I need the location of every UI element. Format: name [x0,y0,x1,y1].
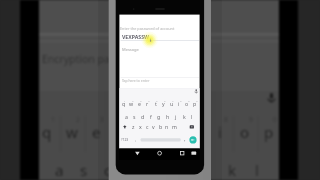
staticText: l [191,113,193,120]
staticText: j [175,113,177,120]
staticText: 1 [124,99,126,102]
staticText: r [146,100,149,107]
staticText: p [193,100,197,107]
staticText: n [165,123,169,130]
staticText: Message [122,47,139,52]
staticText: v [152,123,155,130]
staticText: Enter the password of account [120,26,175,31]
staticText: w [129,100,134,107]
staticText: t [143,122,149,142]
staticText: a [55,160,64,180]
staticText: p [264,122,274,142]
staticText: 9 [188,99,190,102]
staticText: k [228,160,237,180]
staticText: d [141,113,145,120]
staticText: i [218,122,222,142]
staticText: 7 [172,99,174,102]
staticText: 5 [150,115,154,124]
staticText: 2 [132,99,134,102]
staticText: a [125,113,128,120]
staticText: i [178,100,180,107]
staticText: 6 [164,99,166,102]
staticText: o [240,122,250,142]
staticText: Encryption password of [42,52,158,66]
staticText: t [155,100,157,107]
staticText: z [132,123,135,130]
staticText: u [190,122,200,142]
staticText: c [146,123,149,130]
staticText: 7 [199,115,203,124]
staticText: ?123 [121,137,129,142]
staticText: 8 [180,99,182,102]
staticText: VEXPASSW [122,33,150,40]
staticText: o [185,100,189,107]
button[interactable]: Encryption password entry screen [0,0,320,180]
staticText: 4 [148,99,150,102]
staticText: l [255,160,259,180]
staticText: k [183,113,186,120]
staticText: h [178,160,188,180]
staticText: r [118,122,125,142]
staticText: s [80,160,88,180]
staticText: 6 [175,115,179,124]
staticText: f [150,113,152,120]
staticText: y [167,122,175,142]
staticText: d [104,160,114,180]
staticText: q [42,122,52,142]
staticText: x [139,123,142,130]
staticText: w [66,122,78,142]
staticText: e [92,122,101,142]
staticText: Tap here to enter [122,78,150,83]
staticText: g [157,113,161,120]
staticText: 5 [156,99,158,102]
staticText: f [130,160,136,180]
staticText: g [153,160,163,180]
staticText: m [172,123,177,130]
staticText: 0 [196,99,198,102]
staticText: q [122,100,126,107]
staticText: u [170,100,174,107]
staticText: 4 [125,115,129,124]
staticText: b [159,123,163,130]
staticText: h [166,113,170,120]
staticText: 3 [140,99,142,102]
staticText: s [133,113,136,120]
staticText: e [138,100,141,107]
staticText: y [162,100,165,107]
